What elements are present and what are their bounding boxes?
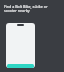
staticText: Find a Bolt Bike, e-bike or scooter near…: [4, 4, 60, 13]
button[interactable]: [7, 64, 34, 68]
